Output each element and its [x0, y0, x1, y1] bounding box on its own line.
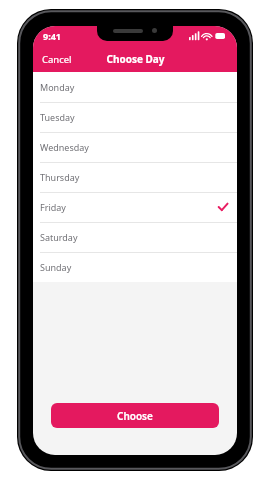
button[interactable]: Choose — [51, 403, 219, 428]
staticText: Thursday — [40, 171, 80, 183]
button[interactable]: Friday — [33, 192, 237, 222]
staticText: Friday — [40, 201, 66, 213]
staticText: Cancel — [42, 53, 72, 66]
button[interactable]: Tuesday — [33, 102, 237, 132]
staticText: Choose — [117, 409, 153, 423]
staticText: Monday — [40, 81, 75, 93]
button[interactable]: Monday — [33, 72, 237, 102]
staticText: Wednesday — [40, 141, 89, 153]
button[interactable]: Thursday — [33, 162, 237, 192]
other: Selected — [217, 201, 229, 213]
staticText: Saturday — [40, 231, 78, 243]
button[interactable]: Wednesday — [33, 132, 237, 162]
staticText: Choose Day — [106, 52, 165, 66]
button[interactable]: Cancel — [39, 50, 75, 69]
button[interactable]: Saturday — [33, 222, 237, 252]
staticText: Sunday — [40, 261, 72, 273]
button[interactable]: Sunday — [33, 252, 237, 282]
staticText: Tuesday — [40, 111, 75, 123]
staticText: 9:41 — [43, 30, 61, 42]
